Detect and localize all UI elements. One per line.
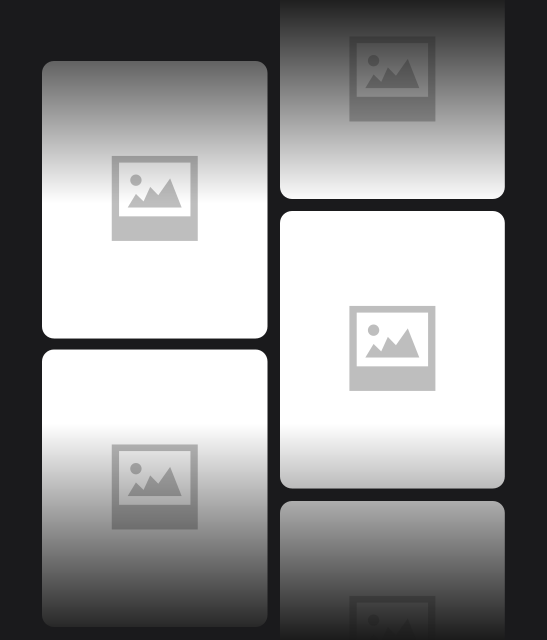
button[interactable]: Photo 1 bbox=[280, 0, 505, 199]
button[interactable]: Photo 3 bbox=[280, 211, 505, 488]
button[interactable]: Photo 4 bbox=[42, 349, 267, 627]
button[interactable]: Photo 2 bbox=[42, 61, 267, 338]
button[interactable]: Photo 5 bbox=[280, 501, 505, 640]
